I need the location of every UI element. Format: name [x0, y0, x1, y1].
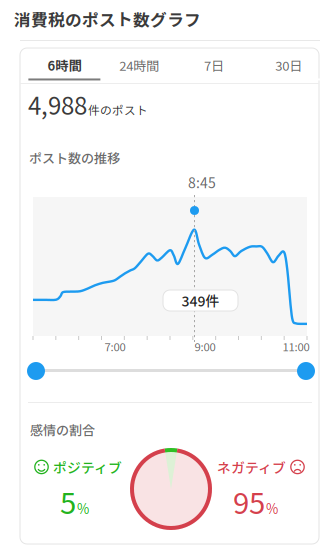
staticText: ネガティブ [217, 457, 286, 477]
button[interactable]: 24時間 [102, 47, 177, 80]
staticText: 30日 [275, 55, 302, 74]
staticText: 349件 [181, 290, 219, 311]
staticText: % [266, 499, 278, 518]
staticText: ポスト数の推移 [29, 148, 120, 167]
staticText: 7日 [204, 55, 224, 74]
staticText: 11:00 [282, 338, 309, 354]
staticText: 9:00 [194, 338, 215, 354]
staticText: 7:00 [104, 338, 125, 354]
staticText: 8:45 [188, 172, 216, 192]
button[interactable]: Range end [297, 362, 315, 380]
staticText: 95 [233, 480, 265, 522]
staticText: % [77, 499, 89, 518]
staticText: 件のポスト [88, 101, 148, 118]
staticText: 24時間 [119, 55, 159, 74]
staticText: ポジティブ [53, 457, 122, 477]
staticText: 4,988 [28, 87, 87, 122]
staticText: 感情の割合 [30, 420, 95, 439]
button[interactable]: 7日 [176, 47, 251, 80]
staticText: 消費税のポスト数グラフ [14, 7, 201, 31]
staticText: 5 [60, 480, 76, 522]
button[interactable]: 30日 [251, 47, 326, 80]
staticText: 6時間 [47, 55, 81, 74]
button[interactable]: 6時間 [27, 47, 102, 80]
button[interactable]: Range start [27, 362, 45, 380]
